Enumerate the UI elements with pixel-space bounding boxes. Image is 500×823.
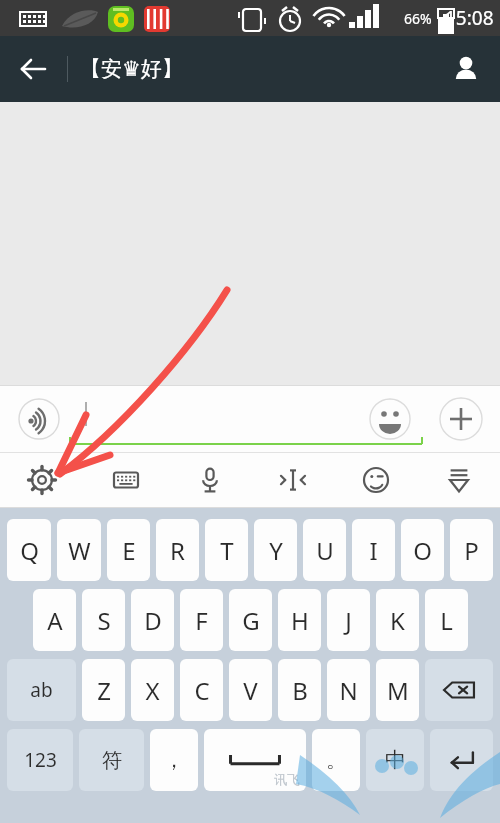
staticText: X xyxy=(145,674,160,707)
button[interactable]: G xyxy=(229,589,272,651)
staticText: G xyxy=(242,604,260,637)
staticText: I xyxy=(369,534,378,567)
button[interactable]: C xyxy=(180,659,223,721)
staticText: ab xyxy=(30,677,53,703)
button[interactable]: 。 xyxy=(312,729,360,791)
button[interactable]: M xyxy=(376,659,419,721)
staticText: 15:08 xyxy=(445,5,494,31)
staticText: Y xyxy=(269,534,283,567)
staticText: S xyxy=(97,604,111,637)
button[interactable]: Settings xyxy=(0,453,84,507)
staticText: C xyxy=(194,674,210,707)
staticText: P xyxy=(464,534,479,567)
staticText: R xyxy=(170,534,185,567)
button[interactable]: ab xyxy=(7,659,76,721)
button[interactable]: W xyxy=(57,519,101,581)
button[interactable]: U xyxy=(303,519,346,581)
staticText: N xyxy=(339,674,358,707)
button[interactable]: Emoji xyxy=(370,398,412,440)
staticText: 。 xyxy=(326,748,346,773)
staticText: V xyxy=(243,674,258,707)
button[interactable]: Hide keyboard xyxy=(417,453,500,507)
staticText: B xyxy=(292,674,308,707)
staticText: E xyxy=(122,534,136,567)
button[interactable] xyxy=(70,394,370,444)
staticText: F xyxy=(195,604,208,637)
staticText: U xyxy=(316,534,334,567)
staticText: J xyxy=(345,604,352,637)
staticText: D xyxy=(144,604,162,637)
button[interactable]: Back xyxy=(8,45,56,93)
button[interactable]: Keyboard xyxy=(84,453,168,507)
button[interactable]: B xyxy=(278,659,321,721)
button[interactable]: S xyxy=(82,589,125,651)
button[interactable]: 123 xyxy=(7,729,73,791)
button[interactable]: F xyxy=(180,589,223,651)
button[interactable]: Voice xyxy=(168,453,251,507)
button[interactable]: A xyxy=(33,589,76,651)
button[interactable]: R xyxy=(156,519,199,581)
staticText: H xyxy=(291,604,309,637)
staticText: L xyxy=(440,604,453,637)
button[interactable]: Voice input xyxy=(19,398,61,440)
button[interactable]: 中 xyxy=(366,729,424,791)
button[interactable]: K xyxy=(376,589,419,651)
button[interactable]: V xyxy=(229,659,272,721)
staticText: A xyxy=(47,604,63,637)
staticText: ， xyxy=(164,748,184,773)
button[interactable]: Backspace xyxy=(425,659,493,721)
staticText: Q xyxy=(20,534,39,567)
staticText: 讯飞 xyxy=(274,771,300,787)
button[interactable]: T xyxy=(205,519,248,581)
button[interactable]: Z xyxy=(82,659,125,721)
staticText: Z xyxy=(97,674,111,707)
staticText: K xyxy=(390,604,405,637)
button[interactable]: N xyxy=(327,659,370,721)
button[interactable]: X xyxy=(131,659,174,721)
staticText: W xyxy=(68,534,91,567)
button[interactable]: H xyxy=(278,589,321,651)
button[interactable]: O xyxy=(401,519,444,581)
button[interactable]: Profile xyxy=(442,45,490,93)
button[interactable]: E xyxy=(107,519,150,581)
button[interactable]: More xyxy=(440,397,484,441)
staticText: 符 xyxy=(102,748,122,773)
button[interactable]: 符 xyxy=(79,729,144,791)
button[interactable]: Space xyxy=(204,729,306,791)
button[interactable]: Enter xyxy=(430,729,493,791)
staticText: 【安♛好】 xyxy=(80,56,183,82)
button[interactable]: L xyxy=(425,589,468,651)
staticText: O xyxy=(413,534,432,567)
button[interactable]: Y xyxy=(254,519,297,581)
button[interactable]: Stickers xyxy=(334,453,417,507)
button[interactable]: J xyxy=(327,589,370,651)
button[interactable]: D xyxy=(131,589,174,651)
button[interactable]: P xyxy=(450,519,493,581)
button[interactable]: I xyxy=(352,519,395,581)
button[interactable]: Q xyxy=(7,519,51,581)
button[interactable]: Text tools xyxy=(251,453,334,507)
button[interactable]: ， xyxy=(150,729,198,791)
staticText: M xyxy=(387,674,409,707)
staticText: T xyxy=(220,534,234,567)
staticText: 123 xyxy=(24,747,57,773)
staticText: 66% xyxy=(404,9,432,28)
staticText: 中 xyxy=(385,747,406,773)
